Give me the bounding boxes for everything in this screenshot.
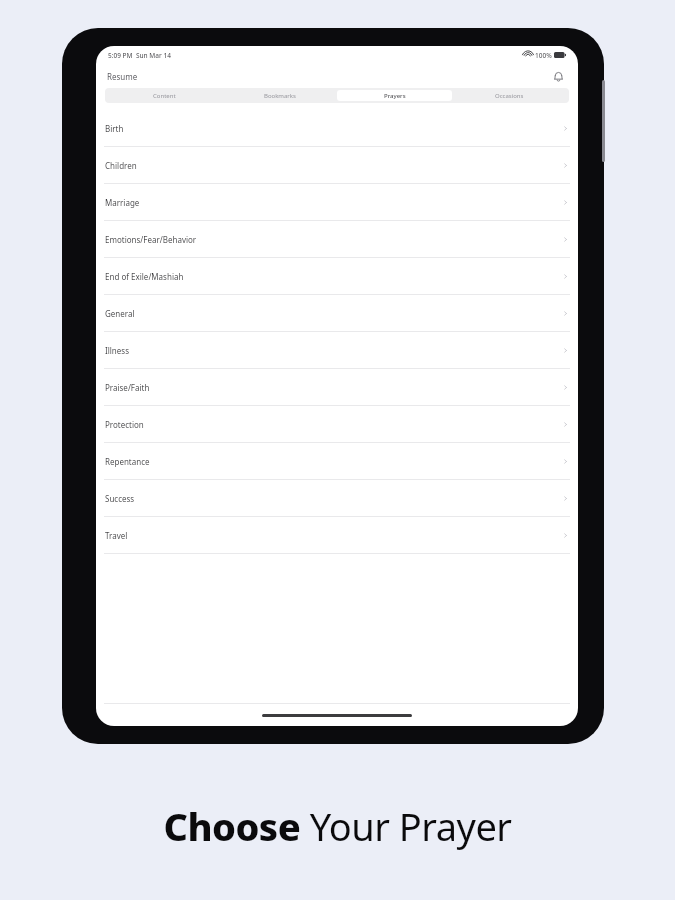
staticText: Resume bbox=[107, 71, 138, 82]
button[interactable]: Occasions bbox=[452, 90, 567, 101]
staticText: Illness bbox=[105, 345, 129, 356]
staticText: Success bbox=[105, 493, 135, 504]
button[interactable]: Notifications bbox=[549, 67, 567, 85]
button[interactable]: Protection bbox=[96, 406, 578, 443]
button[interactable]: Emotions/Fear/Behavior bbox=[96, 221, 578, 258]
staticText: Occasions bbox=[495, 92, 524, 100]
staticText: 5:09 PM Sun Mar 14 bbox=[108, 51, 171, 60]
staticText: Prayers bbox=[384, 92, 406, 100]
staticText: Repentance bbox=[105, 456, 150, 467]
staticText: Choose Your Prayer bbox=[163, 800, 512, 852]
button[interactable]: Praise/Faith bbox=[96, 369, 578, 406]
staticText: Birth bbox=[105, 123, 124, 134]
staticText: General bbox=[105, 308, 135, 319]
staticText: Bookmarks bbox=[264, 92, 296, 100]
button[interactable]: Repentance bbox=[96, 443, 578, 480]
button[interactable]: End of Exile/Mashiah bbox=[96, 258, 578, 295]
button[interactable]: Illness bbox=[96, 332, 578, 369]
staticText: Marriage bbox=[105, 197, 140, 208]
button[interactable]: General bbox=[96, 295, 578, 332]
button[interactable]: Bookmarks bbox=[222, 90, 337, 101]
button[interactable]: Content bbox=[107, 90, 222, 101]
staticText: Praise/Faith bbox=[105, 382, 150, 393]
staticText: Content bbox=[153, 92, 176, 100]
button[interactable]: Birth bbox=[96, 110, 578, 147]
staticText: Travel bbox=[105, 530, 128, 541]
button[interactable]: Success bbox=[96, 480, 578, 517]
staticText: 100% bbox=[535, 51, 552, 60]
button[interactable]: Prayers bbox=[337, 90, 452, 101]
staticText: Protection bbox=[105, 419, 144, 430]
staticText: End of Exile/Mashiah bbox=[105, 271, 184, 282]
staticText: Children bbox=[105, 160, 137, 171]
button[interactable]: Travel bbox=[96, 517, 578, 554]
staticText: Emotions/Fear/Behavior bbox=[105, 234, 197, 245]
button[interactable]: Children bbox=[96, 147, 578, 184]
button[interactable]: Marriage bbox=[96, 184, 578, 221]
